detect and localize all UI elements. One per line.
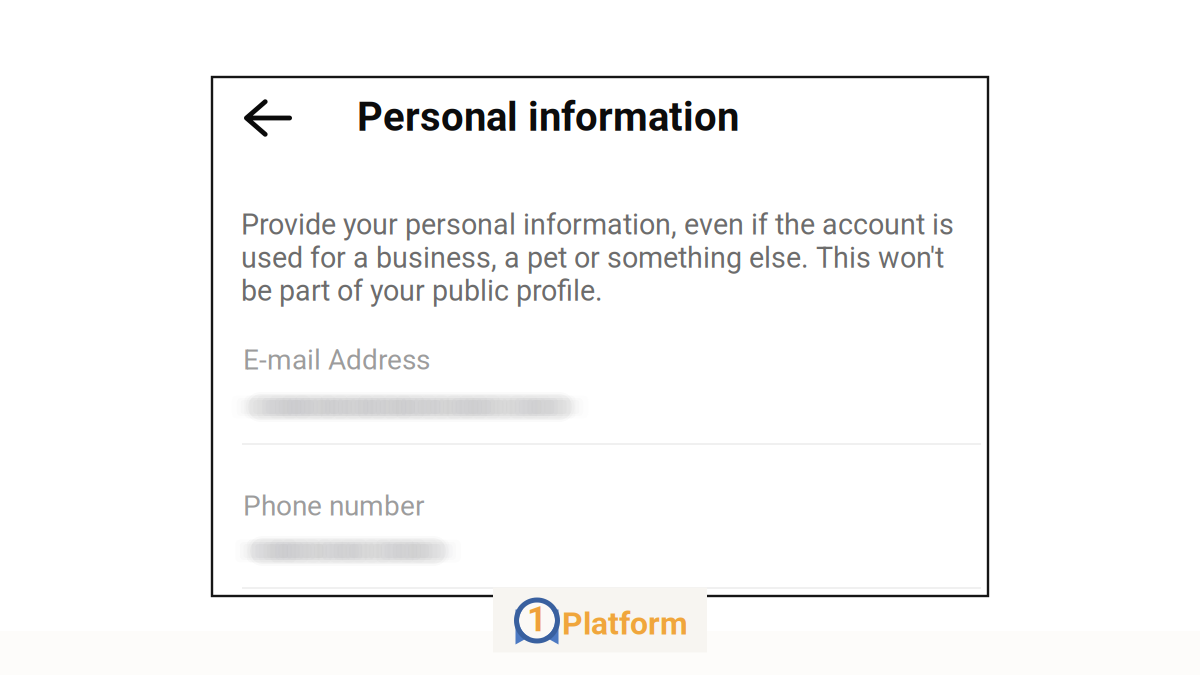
staticText: Phone number — [243, 490, 424, 522]
staticText: Platform — [562, 605, 688, 642]
staticText: Personal information — [357, 94, 739, 140]
button[interactable]: E-mail Address — [212, 341, 988, 445]
staticText: Provide your personal information, even … — [241, 208, 954, 308]
button[interactable]: Back — [216, 82, 320, 154]
button[interactable]: Phone number — [212, 487, 988, 591]
staticText: E-mail Address — [243, 344, 430, 376]
staticText: 1 — [527, 599, 547, 640]
